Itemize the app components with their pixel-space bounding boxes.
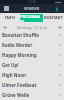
staticText: Montag, 12. Juni [10, 25, 54, 30]
button[interactable]: PROGRAMM [20, 14, 43, 22]
button[interactable]: Happy Morning [0, 52, 64, 62]
staticText: 12:30 [28, 0, 36, 4]
button[interactable]: Radio Werder [0, 42, 64, 52]
staticText: KONTAKT [44, 15, 63, 20]
button[interactable]: High Noon [0, 72, 64, 82]
staticText: Radio Werder [2, 42, 58, 48]
staticText: SENDER [24, 6, 40, 11]
staticText: Grüne Welle [2, 92, 58, 98]
staticText: Ulmer Feelbeat [2, 82, 58, 88]
button[interactable]: Live stream [54, 6, 60, 12]
button[interactable]: INFO [0, 15, 20, 20]
staticText: Get Up! [2, 62, 58, 68]
button[interactable]: Ulmer Feelbeat [0, 82, 64, 92]
staticText: PROGRAMM [20, 14, 43, 22]
button[interactable]: KONTAKT [43, 15, 64, 20]
staticText: High Noon [2, 72, 58, 78]
staticText: Happy Morning [2, 52, 58, 58]
button[interactable]: Get Up! [0, 62, 64, 72]
button[interactable]: Bavarian Shuffle [0, 32, 64, 42]
button[interactable]: Previous day [0, 22, 10, 32]
staticText: Bavarian Shuffle [2, 32, 58, 38]
button[interactable]: Station logo [4, 6, 9, 11]
button[interactable]: Grüne Welle [0, 92, 64, 100]
button[interactable]: Next day [54, 22, 64, 32]
staticText: INFO [5, 15, 16, 20]
